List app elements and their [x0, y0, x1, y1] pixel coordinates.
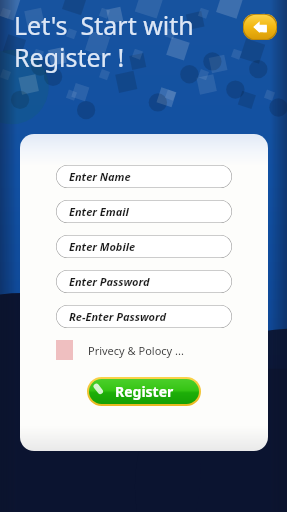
button[interactable]: Register [87, 377, 201, 406]
button[interactable]: Privecy & Polocy ... [56, 339, 232, 361]
staticText: Register ! [14, 40, 125, 74]
button[interactable]: Enter Mobile [56, 235, 232, 258]
staticText: Enter Name [69, 169, 131, 184]
button[interactable]: Enter Password [56, 270, 232, 293]
staticText: Enter Password [69, 274, 150, 289]
button[interactable]: Enter Email [56, 200, 232, 223]
button[interactable]: Back [243, 14, 277, 40]
button[interactable]: Enter Name [56, 165, 232, 188]
staticText: Register [115, 382, 174, 401]
button[interactable]: Re-Enter Password [56, 305, 232, 328]
staticText: Enter Mobile [69, 239, 136, 254]
staticText: Enter Email [69, 204, 129, 219]
staticText: Privecy & Polocy ... [88, 343, 184, 358]
staticText: Let's Start with [14, 8, 194, 42]
staticText: Re-Enter Password [69, 309, 166, 324]
